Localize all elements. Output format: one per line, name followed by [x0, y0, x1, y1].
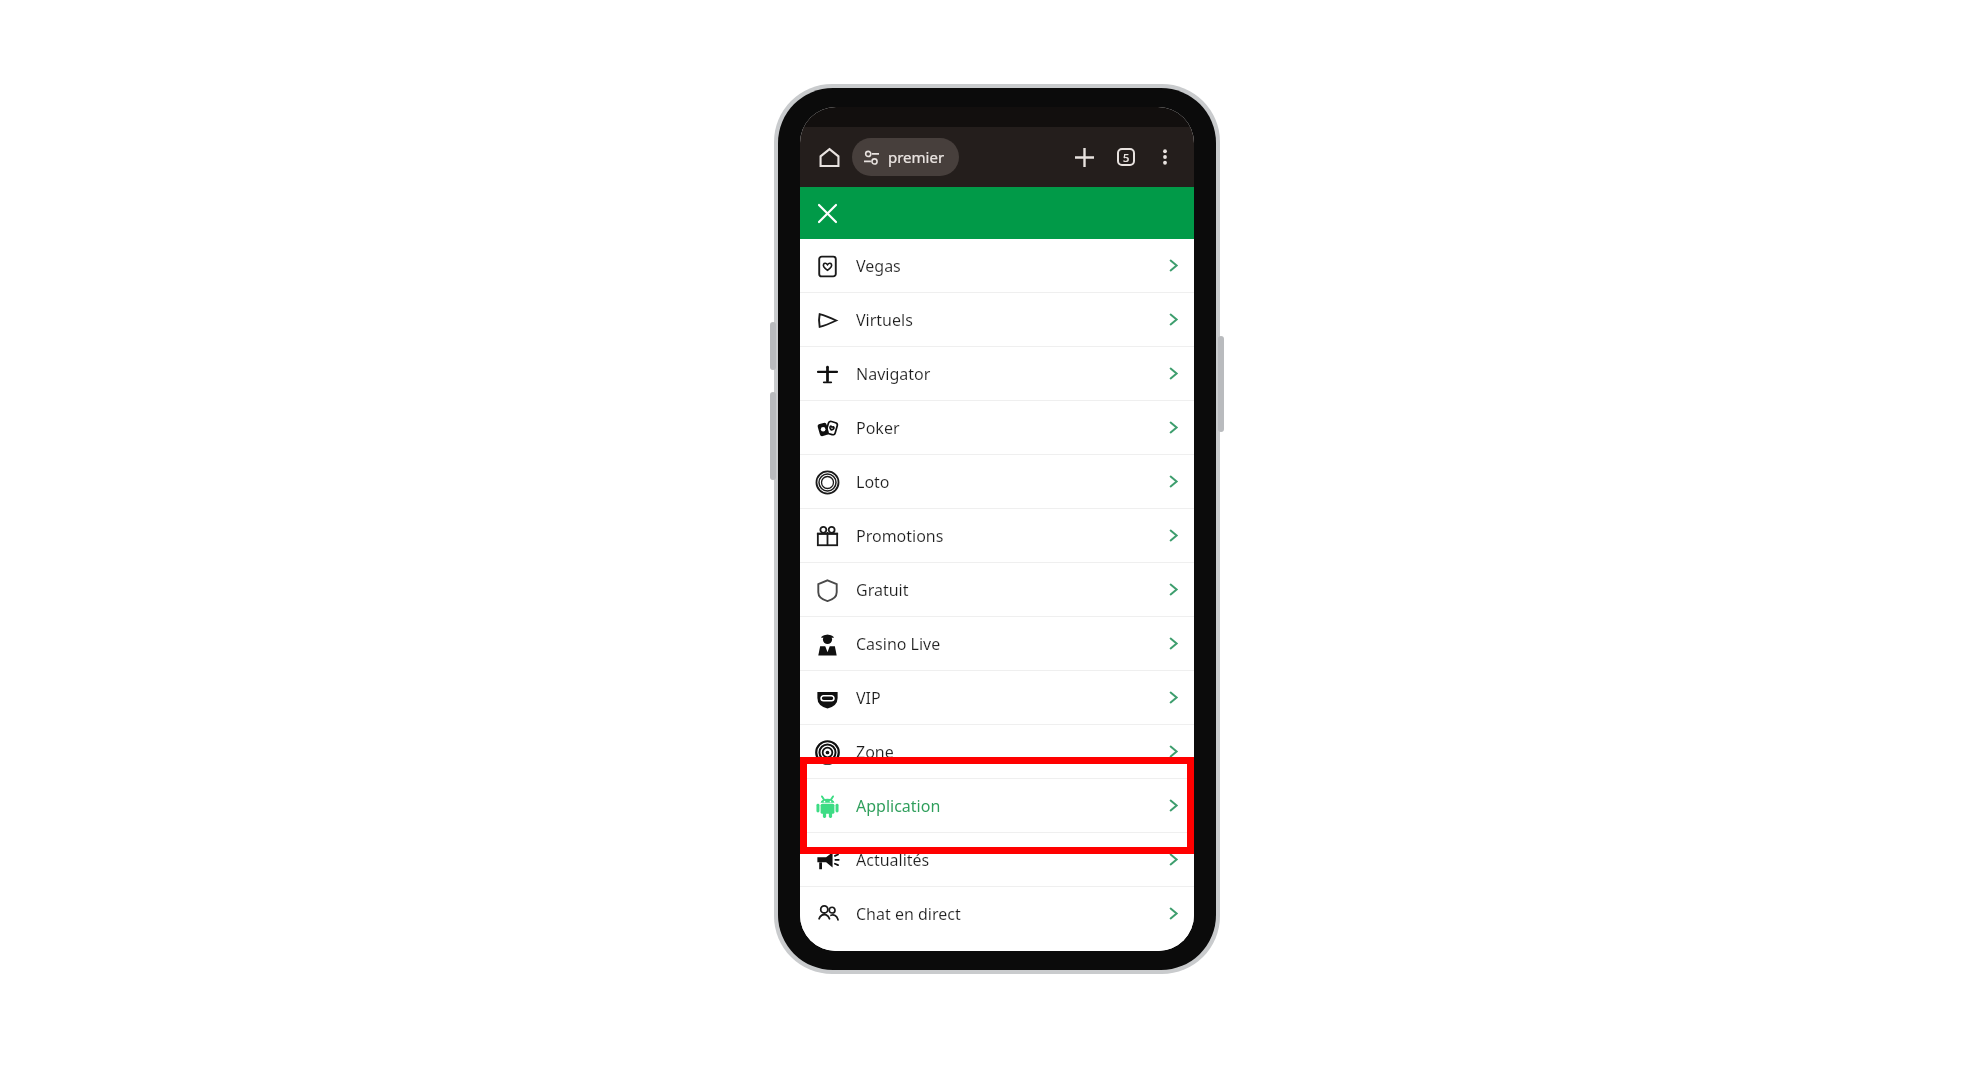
- button[interactable]: Gratuit: [800, 563, 1194, 616]
- button[interactable]: Actualités: [800, 833, 1194, 886]
- staticText: Virtuels: [856, 309, 913, 331]
- staticText: Application: [856, 795, 941, 817]
- button[interactable]: Home: [812, 140, 846, 174]
- staticText: Poker: [856, 417, 900, 439]
- button[interactable]: Casino Live: [800, 617, 1194, 670]
- button[interactable]: Close menu: [808, 194, 846, 232]
- staticText: Chat en direct: [856, 903, 961, 925]
- staticText: Gratuit: [856, 579, 909, 601]
- button[interactable]: Vegas: [800, 239, 1194, 292]
- button[interactable]: Loto: [800, 455, 1194, 508]
- button[interactable]: More options: [1148, 140, 1182, 174]
- button[interactable]: Promotions: [800, 509, 1194, 562]
- staticText: Loto: [856, 471, 890, 493]
- staticText: premierbet.com/c: [888, 147, 951, 167]
- button[interactable]: Chat en direct: [800, 887, 1194, 940]
- staticText: Vegas: [856, 255, 901, 277]
- staticText: Casino Live: [856, 633, 941, 655]
- staticText: Zone: [856, 741, 894, 763]
- button[interactable]: premierbet.com/c: [852, 138, 959, 176]
- button[interactable]: Poker: [800, 401, 1194, 454]
- staticText: Navigator: [856, 363, 931, 385]
- button[interactable]: New tab: [1066, 139, 1102, 175]
- button[interactable]: VIP: [800, 671, 1194, 724]
- staticText: VIP: [856, 687, 881, 709]
- staticText: Actualités: [856, 849, 930, 871]
- button[interactable]: Application: [800, 779, 1194, 832]
- staticText: Promotions: [856, 525, 944, 547]
- button[interactable]: Tabs: 5: [1108, 139, 1144, 175]
- staticText: 5: [1123, 150, 1130, 165]
- button[interactable]: Virtuels: [800, 293, 1194, 346]
- button[interactable]: Navigator: [800, 347, 1194, 400]
- button[interactable]: Zone: [800, 725, 1194, 778]
